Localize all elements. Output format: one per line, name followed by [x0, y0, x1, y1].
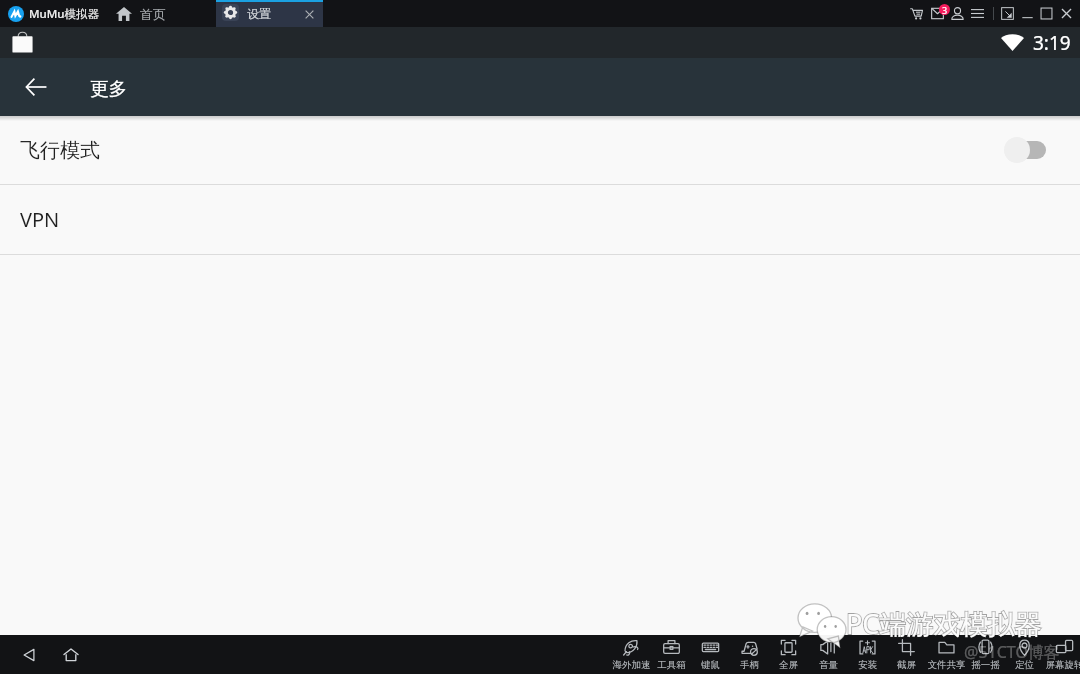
staticText: MuMu模拟器: [29, 6, 100, 22]
staticText: 3:19: [1033, 30, 1071, 56]
button[interactable]: Home: [54, 641, 88, 669]
button[interactable]: Close tab: [298, 3, 320, 25]
staticText: 手柄: [730, 659, 769, 671]
staticText: 更多: [90, 77, 127, 100]
staticText: 海外加速: [612, 659, 651, 671]
button[interactable]: Messages: [927, 2, 948, 25]
staticText: PC端游戏模拟器: [846, 605, 1042, 642]
button[interactable]: 全屏: [769, 635, 808, 674]
button[interactable]: Airplane mode toggle: [1000, 133, 1050, 167]
button[interactable]: Restore down: [997, 2, 1018, 25]
button[interactable]: 设置: [216, 0, 323, 27]
staticText: 设置: [247, 6, 271, 21]
staticText: @51CTO博客: [964, 641, 1060, 663]
staticText: 工具箱: [652, 659, 691, 671]
staticText: 全屏: [769, 659, 808, 671]
staticText: 截屏: [887, 659, 926, 671]
button[interactable]: 安装: [848, 635, 887, 674]
button[interactable]: 定位: [1005, 635, 1044, 674]
button[interactable]: 音量: [809, 635, 848, 674]
button[interactable]: VPN: [0, 185, 1080, 255]
staticText: 屏幕旋转: [1045, 659, 1080, 671]
button[interactable]: Close: [1056, 2, 1077, 25]
staticText: PC端游戏模拟器: [846, 605, 1042, 642]
button[interactable]: 手柄: [730, 635, 769, 674]
staticText: 飞行模式: [20, 138, 100, 163]
button[interactable]: 海外加速: [612, 635, 651, 674]
button[interactable]: 工具箱: [652, 635, 691, 674]
button[interactable]: 首页: [112, 0, 164, 27]
button[interactable]: Menu: [967, 2, 988, 25]
button[interactable]: 屏幕旋转: [1045, 635, 1080, 674]
staticText: 安装: [848, 659, 887, 671]
button[interactable]: 摇一摇: [966, 635, 1005, 674]
button[interactable]: 飞行模式: [0, 116, 1080, 185]
staticText: 摇一摇: [966, 659, 1005, 671]
button[interactable]: Account: [947, 2, 968, 25]
staticText: VPN: [20, 206, 60, 233]
button[interactable]: 键鼠: [691, 635, 730, 674]
staticText: 键鼠: [691, 659, 730, 671]
button[interactable]: Back: [12, 641, 46, 669]
staticText: 3: [942, 4, 948, 15]
staticText: 文件共享: [927, 659, 966, 671]
staticText: 首页: [140, 6, 166, 22]
button[interactable]: Shopping cart: [906, 2, 927, 25]
button[interactable]: 文件共享: [927, 635, 966, 674]
staticText: 音量: [809, 659, 848, 671]
button[interactable]: Maximize: [1036, 2, 1057, 25]
button[interactable]: 截屏: [887, 635, 926, 674]
button[interactable]: Minimize: [1017, 2, 1038, 25]
staticText: 定位: [1005, 659, 1044, 671]
button[interactable]: Back: [14, 65, 58, 109]
